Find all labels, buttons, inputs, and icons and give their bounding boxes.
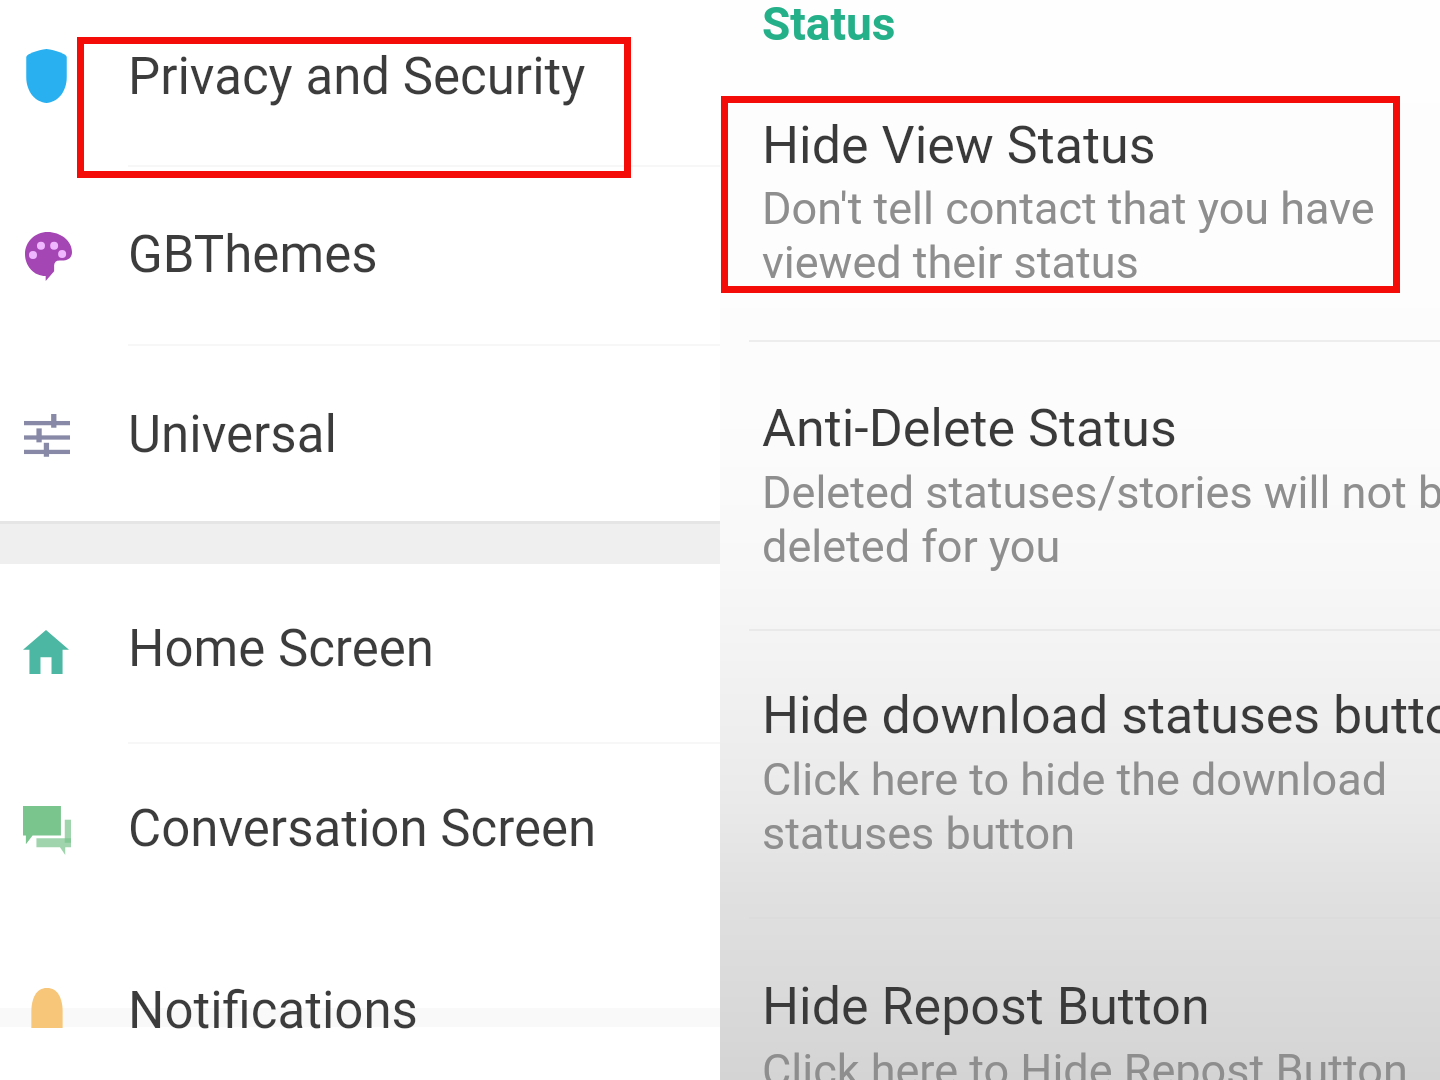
staticText: Status: [762, 0, 896, 51]
staticText: Home Screen: [128, 619, 434, 679]
other: Conversation Screen: [23, 806, 71, 855]
button[interactable]: Universal: [0, 345, 720, 521]
staticText: Notifications: [128, 981, 418, 1041]
staticText: Universal: [128, 405, 337, 465]
button[interactable]: Anti-Delete Status: [720, 341, 1440, 629]
staticText: Click here to hide the download statuses…: [762, 753, 1388, 860]
button[interactable]: Conversation Screen: [0, 743, 720, 930]
other: Privacy and Security: [24, 49, 69, 103]
staticText: Anti-Delete Status: [762, 398, 1177, 459]
button[interactable]: Notifications: [0, 931, 720, 1080]
other: Home Screen: [23, 630, 69, 674]
staticText: Hide View Status: [762, 115, 1156, 176]
button[interactable]: Hide Repost Button: [720, 918, 1440, 1080]
button[interactable]: Privacy and Security: [0, 0, 720, 165]
other: Universal: [24, 414, 70, 459]
other: GBThemes: [25, 232, 72, 281]
staticText: Hide download statuses butto: [762, 685, 1440, 746]
staticText: Hide Repost Button: [762, 976, 1210, 1037]
staticText: Privacy and Security: [128, 47, 586, 107]
button[interactable]: Hide View Status: [720, 96, 1440, 340]
staticText: Click here to Hide Repost Button: [762, 1044, 1408, 1080]
staticText: Don't tell contact that you have viewed …: [762, 182, 1375, 289]
button[interactable]: Home Screen: [0, 564, 720, 742]
button[interactable]: GBThemes: [0, 166, 720, 344]
staticText: Conversation Screen: [128, 799, 597, 859]
staticText: GBThemes: [128, 225, 378, 285]
other: Notifications: [30, 988, 64, 1028]
button[interactable]: Hide download statuses butto: [720, 630, 1440, 917]
staticText: Deleted statuses/stories will not b dele…: [762, 466, 1440, 573]
